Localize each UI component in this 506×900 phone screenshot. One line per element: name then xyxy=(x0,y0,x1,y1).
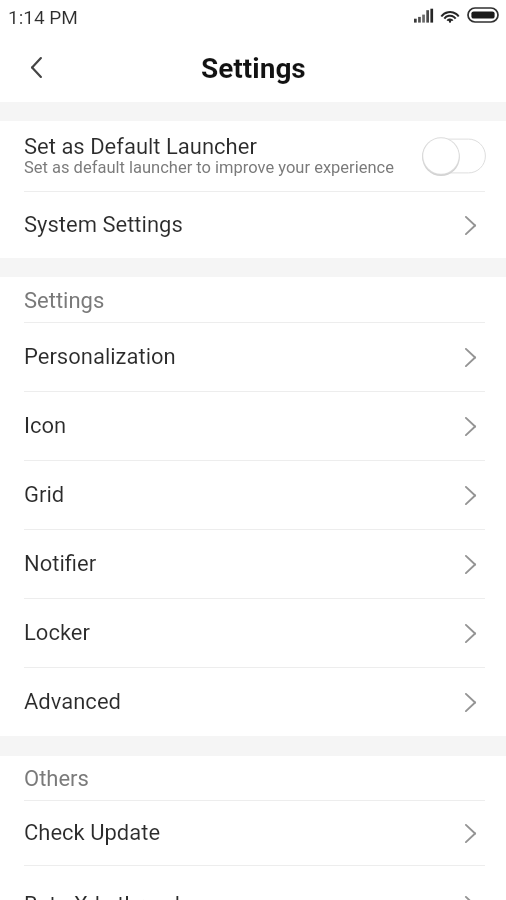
staticText: Advanced xyxy=(24,689,465,715)
button[interactable]: Personalization xyxy=(0,323,506,391)
staticText: Set as default launcher to improve your … xyxy=(24,158,394,177)
staticText: Beta Xda thread xyxy=(24,892,465,900)
staticText: Notifier xyxy=(24,551,465,577)
button[interactable]: Locker xyxy=(0,599,506,667)
button[interactable]: Back xyxy=(0,34,72,102)
staticText: Others xyxy=(24,766,89,792)
button[interactable]: Icon xyxy=(0,392,506,460)
button[interactable]: Set as Default Launcher xyxy=(0,121,506,191)
button[interactable]: System Settings xyxy=(0,192,506,258)
staticText: System Settings xyxy=(24,212,465,238)
button[interactable]: Notifier xyxy=(0,530,506,598)
button[interactable]: Beta Xda thread xyxy=(0,866,506,900)
staticText: Settings xyxy=(24,288,105,314)
staticText: 1:14 PM xyxy=(8,6,78,28)
staticText: Personalization xyxy=(24,344,465,370)
staticText: Set as Default Launcher xyxy=(24,134,257,160)
button[interactable]: Check Update xyxy=(0,801,506,865)
staticText: Check Update xyxy=(24,820,465,846)
button[interactable]: Advanced xyxy=(0,668,506,736)
staticText: Grid xyxy=(24,482,465,508)
staticText: Icon xyxy=(24,413,465,439)
staticText: Locker xyxy=(24,620,465,646)
button[interactable]: Grid xyxy=(0,461,506,529)
staticText: Settings xyxy=(201,52,306,85)
